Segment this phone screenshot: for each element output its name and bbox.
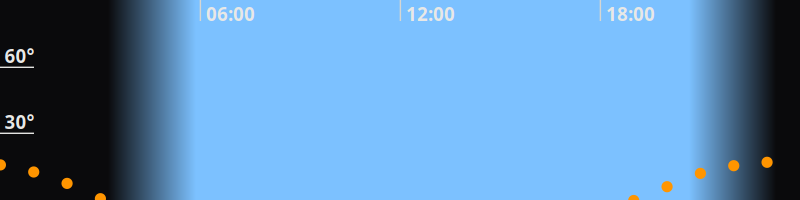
staticText: 30° xyxy=(5,109,35,134)
staticText: 18:00 xyxy=(606,1,655,26)
staticText: 06:00 xyxy=(206,1,255,26)
staticText: 12:00 xyxy=(406,1,455,26)
staticText: 60° xyxy=(5,43,35,68)
